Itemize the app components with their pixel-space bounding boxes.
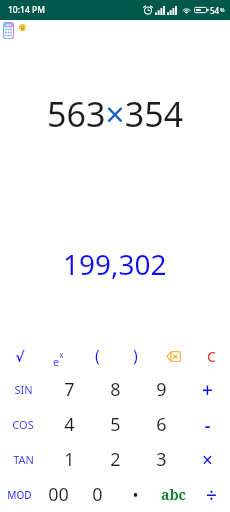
button[interactable]: TAN xyxy=(0,442,46,477)
staticText: 54 xyxy=(210,5,220,16)
staticText: MOD xyxy=(7,488,32,502)
staticText: 0 xyxy=(92,482,103,507)
staticText: ex xyxy=(53,349,64,369)
button[interactable]: abc xyxy=(154,477,192,512)
staticText: 1 xyxy=(64,447,75,472)
staticText: 00 xyxy=(48,482,69,507)
staticText: 3 xyxy=(156,447,167,472)
staticText: √ xyxy=(15,349,25,365)
staticText: ( xyxy=(95,345,100,367)
button[interactable]: 2 xyxy=(92,442,138,477)
button[interactable]: • xyxy=(116,477,154,512)
button[interactable]: 8 xyxy=(92,372,138,407)
button[interactable]: ÷ xyxy=(192,477,230,512)
button[interactable]: 1 xyxy=(46,442,92,477)
staticText: ) xyxy=(133,345,138,367)
staticText: 9 xyxy=(156,377,167,402)
staticText: 2 xyxy=(110,447,121,472)
staticText: COS xyxy=(12,417,34,432)
button[interactable]: MOD xyxy=(0,477,39,512)
button[interactable]: Backspace xyxy=(154,337,192,372)
button[interactable]: × xyxy=(184,442,230,477)
button[interactable]: 7 xyxy=(46,372,92,407)
button[interactable]: + xyxy=(184,372,230,407)
button[interactable]: 6 xyxy=(138,407,184,442)
button[interactable]: 3 xyxy=(138,442,184,477)
button[interactable]: 4 xyxy=(46,407,92,442)
staticText: • xyxy=(132,484,139,506)
staticText: 4 xyxy=(64,412,75,437)
staticText: 10:14 PM xyxy=(8,4,45,16)
staticText: - xyxy=(204,412,211,438)
button[interactable]: COS xyxy=(0,407,46,442)
button[interactable]: SIN xyxy=(0,372,46,407)
button[interactable]: ( xyxy=(78,337,116,372)
button[interactable]: 0 xyxy=(78,477,116,512)
staticText: 199,302 xyxy=(63,245,167,283)
button[interactable]: 00 xyxy=(39,477,78,512)
staticText: 7 xyxy=(64,377,75,402)
staticText: ÷ xyxy=(206,482,217,508)
staticText: % xyxy=(220,6,225,13)
button[interactable]: Square root xyxy=(0,337,39,372)
staticText: C xyxy=(207,347,216,366)
staticText: 5 xyxy=(110,412,121,437)
staticText: 8 xyxy=(110,377,121,402)
button[interactable]: ) xyxy=(116,337,154,372)
staticText: + xyxy=(202,377,213,403)
staticText: 6 xyxy=(156,412,167,437)
button[interactable]: C xyxy=(192,337,230,372)
staticText: 563×354 xyxy=(47,91,184,137)
staticText: SIN xyxy=(14,382,33,397)
staticText: × xyxy=(202,447,213,473)
staticText: TAN xyxy=(13,452,34,467)
button[interactable]: e to the power x xyxy=(39,337,78,372)
button[interactable]: 9 xyxy=(138,372,184,407)
staticText: abc xyxy=(161,485,186,504)
button[interactable]: 5 xyxy=(92,407,138,442)
button[interactable]: - xyxy=(184,407,230,442)
